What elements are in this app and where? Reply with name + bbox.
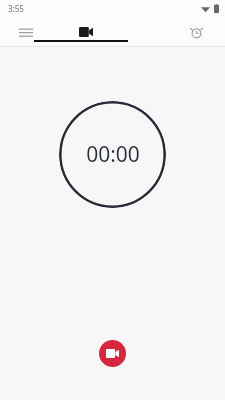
staticText: 00:00: [86, 140, 140, 169]
button[interactable]: 00:00: [59, 101, 166, 208]
button[interactable]: Start recording: [99, 340, 126, 367]
staticText: 3:55: [8, 3, 24, 14]
button[interactable]: Menu: [0, 17, 52, 47]
button[interactable]: Video recorder: [52, 17, 120, 47]
button[interactable]: Scheduled recording: [167, 17, 225, 47]
